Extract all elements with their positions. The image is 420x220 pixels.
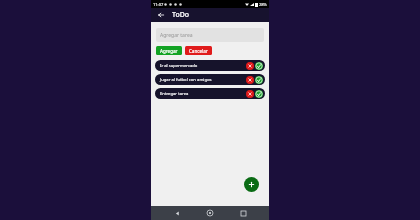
button[interactable]: Complete task	[255, 90, 263, 98]
button[interactable]: Ir al supermercado	[155, 60, 265, 71]
button[interactable]: Delete task	[246, 76, 254, 84]
button[interactable]: Cancelar	[185, 46, 212, 55]
staticText: Agregar tarea	[160, 32, 193, 39]
button[interactable]: Jugar al futbol con amigos	[155, 74, 265, 85]
staticText: Entregar tarea	[160, 91, 246, 97]
button[interactable]: Delete task	[246, 62, 254, 70]
staticText: Jugar al futbol con amigos	[160, 77, 246, 83]
button[interactable]: Agregar	[156, 46, 182, 55]
button[interactable]: Agregar tarea	[156, 28, 264, 42]
staticText: Cancelar	[189, 48, 208, 54]
staticText: Ir al supermercado	[160, 63, 246, 69]
button[interactable]: Entregar tarea	[155, 88, 265, 99]
button[interactable]: Complete task	[255, 62, 263, 70]
staticText: 11:07	[153, 2, 164, 7]
button[interactable]: Complete task	[255, 76, 263, 84]
button[interactable]: Delete task	[246, 90, 254, 98]
button[interactable]: Home	[203, 206, 217, 220]
staticText: Agregar	[160, 48, 178, 54]
button[interactable]: Recent apps	[236, 206, 250, 220]
staticText: ToDo	[172, 10, 190, 20]
staticText: 28%	[259, 2, 267, 7]
button[interactable]: Back	[170, 206, 184, 220]
button[interactable]: Add task	[244, 177, 259, 192]
button[interactable]: Back	[156, 10, 166, 20]
